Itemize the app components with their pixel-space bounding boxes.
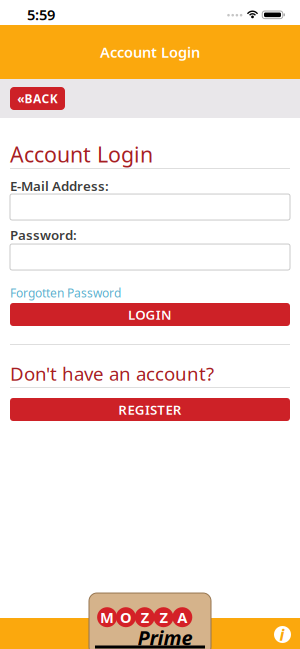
staticText: O bbox=[120, 607, 132, 627]
staticText: Don't have an account? bbox=[10, 361, 214, 386]
button[interactable]: LOGIN bbox=[10, 303, 290, 326]
staticText: REGISTER bbox=[118, 401, 182, 418]
staticText: i bbox=[279, 624, 284, 645]
staticText: A bbox=[177, 607, 187, 627]
staticText: Account Login bbox=[10, 140, 153, 168]
staticText: M bbox=[100, 607, 114, 627]
button[interactable]: i bbox=[274, 626, 291, 643]
staticText: E-Mail Address: bbox=[10, 177, 109, 195]
button[interactable]: REGISTER bbox=[10, 398, 290, 421]
staticText: Password: bbox=[10, 226, 77, 244]
button[interactable]: Forgotten Password bbox=[10, 285, 121, 301]
button[interactable]: «BACK bbox=[10, 87, 65, 110]
staticText: «BACK bbox=[17, 90, 58, 106]
staticText: Account Login bbox=[100, 42, 200, 62]
staticText: 5:59 bbox=[27, 5, 55, 24]
staticText: Z bbox=[141, 607, 149, 627]
staticText: Prime bbox=[137, 624, 192, 649]
staticText: LOGIN bbox=[128, 306, 172, 323]
staticText: Z bbox=[159, 607, 167, 627]
staticText: Forgotten Password bbox=[10, 285, 121, 301]
